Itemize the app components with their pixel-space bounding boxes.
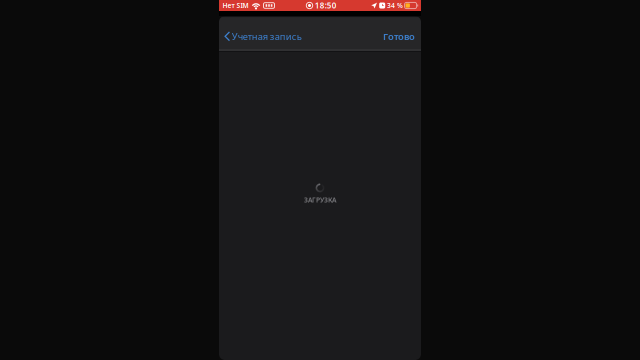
button[interactable]: Готово [378,21,420,52]
button[interactable]: Учетная запись [220,21,306,52]
staticText: Учетная запись [232,30,302,42]
staticText: 18:50 [315,0,337,11]
staticText: Нет SIM [222,1,248,10]
staticText: Готово [383,30,415,42]
staticText: ЗАГРУЗКА [304,195,336,204]
staticText: 34 % [387,1,403,10]
